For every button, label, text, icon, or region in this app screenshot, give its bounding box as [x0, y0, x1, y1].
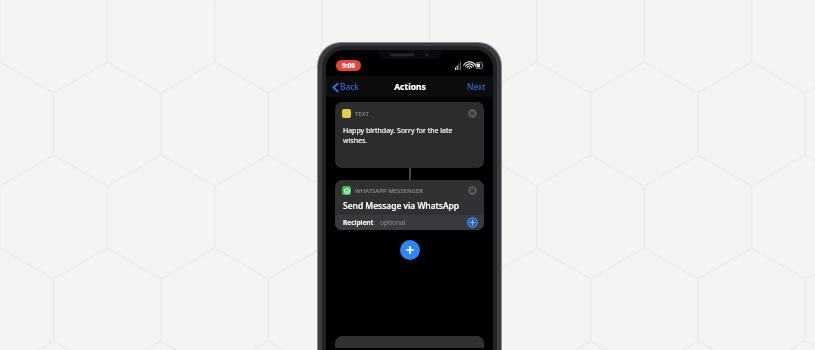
button[interactable]: WHATSAPP MESSENGER — [335, 180, 484, 230]
staticText: Next — [467, 81, 486, 93]
staticText: Actions — [394, 81, 426, 93]
button[interactable]: Remove action — [468, 109, 477, 118]
staticText: optional — [380, 218, 406, 227]
staticText: TEXT — [355, 110, 369, 118]
button[interactable]: Back — [326, 77, 365, 97]
staticText: Back — [340, 81, 359, 93]
staticText: Happy birthday. Sorry for the late wishe… — [343, 126, 476, 146]
button[interactable]: Recipient — [335, 215, 484, 230]
button[interactable]: Add action — [400, 240, 420, 260]
staticText: Recipient — [343, 218, 374, 227]
staticText: Send Message via WhatsApp — [343, 200, 460, 212]
staticText: 9:00 — [342, 61, 355, 70]
button[interactable]: Add recipient — [467, 217, 478, 228]
button[interactable]: Next — [460, 77, 493, 97]
button[interactable]: Remove action — [468, 186, 477, 195]
button[interactable]: TEXT — [335, 102, 484, 168]
staticText: WHATSAPP MESSENGER — [355, 187, 424, 195]
